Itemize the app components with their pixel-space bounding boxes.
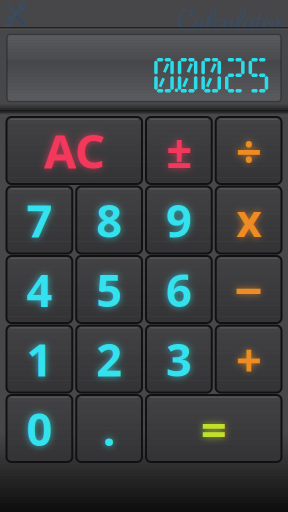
button[interactable]: ± — [146, 117, 212, 184]
staticText: Calculator — [177, 2, 282, 40]
button[interactable]: 4 — [6, 256, 72, 323]
staticText: . — [103, 398, 116, 459]
staticText: ÷ — [236, 120, 262, 181]
staticText: 5 — [96, 259, 122, 320]
staticText: − — [234, 257, 263, 322]
button[interactable]: 2 — [76, 325, 142, 392]
button[interactable]: 1 — [6, 325, 72, 392]
button[interactable]: 0 — [6, 395, 72, 462]
staticText: 2 — [96, 329, 122, 389]
button[interactable]: 3 — [146, 325, 212, 392]
staticText: x — [236, 191, 261, 249]
staticText: ± — [166, 120, 192, 181]
button[interactable]: ÷ — [216, 117, 282, 184]
button[interactable]: − — [216, 256, 282, 323]
button[interactable]: 5 — [76, 256, 142, 323]
staticText: 7 — [26, 190, 52, 250]
button[interactable]: x — [216, 186, 282, 253]
button[interactable]: + — [216, 325, 282, 392]
staticText: 9 — [166, 190, 192, 250]
button[interactable]: 7 — [6, 186, 72, 253]
staticText: 8 — [96, 190, 122, 250]
staticText: = — [201, 398, 227, 459]
button[interactable]: 9 — [146, 186, 212, 253]
staticText: 3 — [166, 329, 192, 389]
staticText: 1 — [26, 329, 52, 389]
button[interactable]: = — [146, 395, 281, 462]
button[interactable]: Settings — [3, 1, 29, 27]
staticText: 0 — [26, 398, 52, 459]
button[interactable]: AC — [6, 117, 142, 184]
button[interactable]: 8 — [76, 186, 142, 253]
button[interactable]: 6 — [146, 256, 212, 323]
staticText: 4 — [26, 259, 52, 320]
staticText: + — [236, 329, 262, 389]
button[interactable]: . — [76, 395, 142, 462]
staticText: AC — [44, 119, 105, 181]
staticText: 6 — [166, 259, 192, 320]
